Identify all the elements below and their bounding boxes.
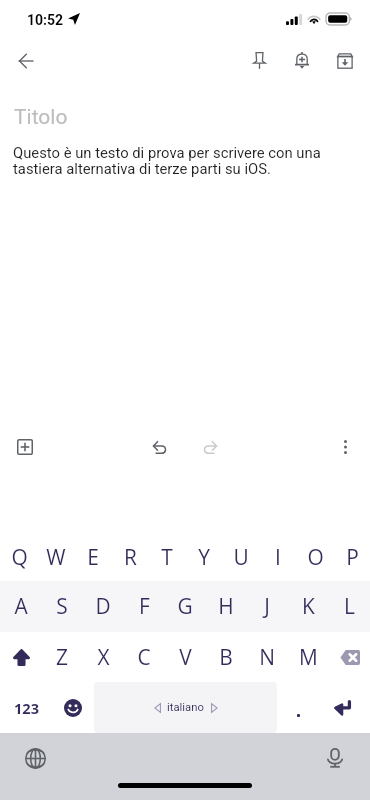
staticText: italiano — [167, 701, 204, 714]
button[interactable]: U — [222, 534, 260, 580]
button[interactable]: N — [248, 634, 286, 680]
staticText: X — [97, 643, 110, 671]
staticText: Titolo — [14, 105, 68, 130]
staticText: V — [179, 643, 192, 671]
button[interactable]: Shift — [1, 632, 42, 682]
button[interactable]: italiano — [94, 682, 277, 733]
staticText: 10:52 — [27, 12, 64, 28]
staticText: S — [56, 592, 68, 620]
staticText: J — [264, 592, 270, 620]
button[interactable]: A — [2, 583, 40, 629]
button[interactable]: R — [111, 534, 149, 580]
staticText: N — [259, 643, 275, 671]
button[interactable]: Return — [322, 682, 364, 733]
button[interactable]: Y — [185, 534, 223, 580]
button[interactable]: Backspace — [329, 632, 370, 682]
button[interactable]: Z — [43, 634, 81, 680]
button[interactable]: E — [74, 534, 112, 580]
button[interactable] — [277, 682, 319, 733]
button[interactable]: L — [330, 583, 368, 629]
button[interactable]: Dictation — [315, 738, 355, 778]
button[interactable]: S — [43, 583, 81, 629]
staticText: Y — [198, 543, 210, 571]
staticText: Questo è un testo di prova per scrivere … — [13, 144, 333, 178]
button[interactable]: Undo — [139, 426, 181, 468]
button[interactable]: O — [296, 534, 334, 580]
staticText: U — [233, 543, 249, 571]
button[interactable]: X — [84, 634, 122, 680]
button[interactable]: Archive — [324, 40, 365, 81]
button[interactable]: C — [125, 634, 163, 680]
staticText: W — [46, 543, 66, 571]
button[interactable]: 123 — [5, 682, 48, 733]
staticText: R — [124, 543, 137, 571]
staticText: F — [139, 592, 150, 620]
staticText: H — [218, 592, 234, 620]
button[interactable]: H — [207, 583, 245, 629]
staticText: K — [302, 592, 315, 620]
staticText: D — [95, 592, 111, 620]
button[interactable]: T — [148, 534, 186, 580]
staticText: B — [219, 643, 233, 671]
staticText: I — [275, 543, 281, 571]
button[interactable]: More options — [324, 426, 366, 468]
button[interactable]: B — [207, 634, 245, 680]
staticText: Z — [56, 643, 68, 671]
staticText: M — [299, 643, 318, 671]
staticText: T — [161, 543, 173, 571]
staticText: O — [307, 543, 324, 571]
button[interactable]: F — [125, 583, 163, 629]
button[interactable]: G — [166, 583, 204, 629]
button[interactable]: M — [289, 634, 327, 680]
button[interactable]: Emoji — [51, 682, 94, 733]
button[interactable]: Redo — [189, 426, 231, 468]
staticText: 123 — [14, 698, 40, 718]
staticText: A — [14, 592, 28, 620]
staticText: L — [344, 592, 355, 620]
button[interactable]: Add — [4, 426, 46, 468]
staticText: G — [177, 592, 193, 620]
button[interactable]: Pin — [239, 40, 280, 81]
button[interactable]: Change language — [15, 738, 55, 778]
button[interactable]: J — [248, 583, 286, 629]
button[interactable]: D — [84, 583, 122, 629]
staticText: E — [87, 543, 99, 571]
button[interactable]: I — [259, 534, 297, 580]
button[interactable]: P — [333, 534, 370, 580]
button[interactable]: K — [289, 583, 327, 629]
staticText: Q — [11, 543, 28, 571]
button[interactable]: Back — [5, 40, 46, 81]
staticText: P — [346, 543, 359, 571]
staticText: C — [137, 643, 151, 671]
button[interactable]: Q — [0, 534, 38, 580]
button[interactable]: V — [166, 634, 204, 680]
button[interactable]: W — [37, 534, 75, 580]
button[interactable]: Reminder — [281, 40, 322, 81]
